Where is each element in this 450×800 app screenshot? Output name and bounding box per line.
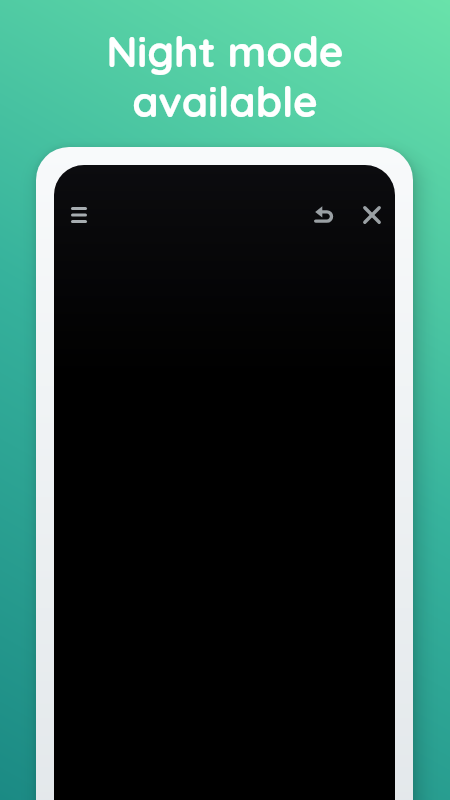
button[interactable] — [306, 197, 342, 233]
button[interactable] — [354, 197, 390, 233]
button[interactable] — [61, 197, 97, 233]
staticText: Night mode available — [0, 25, 450, 128]
